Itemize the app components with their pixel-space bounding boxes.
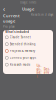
staticText: What's included [5,30,29,34]
staticText: Connect your apps [10,56,36,59]
staticText: Upgrade [36,64,41,78]
button[interactable]: Back [2,5,7,13]
staticText: Usage [22,6,34,12]
staticText: Pro plan [3,25,15,28]
staticText: ‹ [3,5,5,13]
button[interactable]: Claude Sonnet [3,34,53,41]
staticText: Resets in 3 days [31,13,53,16]
staticText: Current usage [3,13,20,24]
staticText: Usage limits [20,1,36,4]
button[interactable]: Upgrade [36,69,42,73]
staticText: Claude Sonnet [10,35,31,39]
button[interactable]: Projects & memory [3,48,53,54]
button[interactable]: Research mode [3,61,53,68]
staticText: Projects & memory [10,49,35,53]
button[interactable]: Resets in 3 days [31,13,53,16]
button[interactable]: Connect your apps [3,54,53,61]
staticText: Details [44,67,50,75]
button[interactable]: Extended thinking [3,41,53,47]
button[interactable]: Details [44,69,50,73]
staticText: Extended thinking [10,42,36,46]
staticText: Research mode [10,63,31,66]
